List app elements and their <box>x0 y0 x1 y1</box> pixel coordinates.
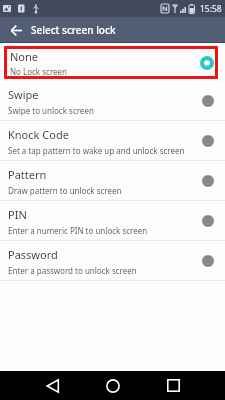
staticText: Enter a password to unlock screen <box>8 265 137 276</box>
button[interactable]: Swipe <box>0 81 225 121</box>
staticText: Password <box>8 247 58 262</box>
button[interactable]: Pattern <box>0 161 225 201</box>
staticText: Pattern <box>8 167 47 182</box>
staticText: PIN <box>8 207 27 222</box>
staticText: No Lock screen <box>10 66 68 77</box>
staticText: 15:58 <box>200 3 222 15</box>
staticText: Draw pattern to unlock screen <box>8 185 122 196</box>
button[interactable] <box>83 371 143 400</box>
staticText: Swipe to unlock screen <box>8 105 94 116</box>
staticText: Enter a numeric PIN to unlock screen <box>8 225 148 236</box>
button[interactable] <box>4 18 28 42</box>
staticText: Knock Code <box>8 127 69 142</box>
button[interactable] <box>143 371 203 400</box>
button[interactable]: Knock Code <box>0 121 225 161</box>
button[interactable]: None <box>4 46 218 79</box>
staticText: Select screen lock <box>31 23 116 37</box>
button[interactable] <box>23 371 83 400</box>
staticText: Swipe <box>8 87 39 102</box>
staticText: None <box>10 49 39 64</box>
staticText: Set a tap pattern to wake up and unlock … <box>8 145 185 156</box>
button[interactable]: Password <box>0 241 225 281</box>
button[interactable]: PIN <box>0 201 225 241</box>
